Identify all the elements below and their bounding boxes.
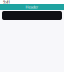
staticText: Header (25, 4, 38, 10)
staticText: 9:41 (3, 0, 10, 5)
